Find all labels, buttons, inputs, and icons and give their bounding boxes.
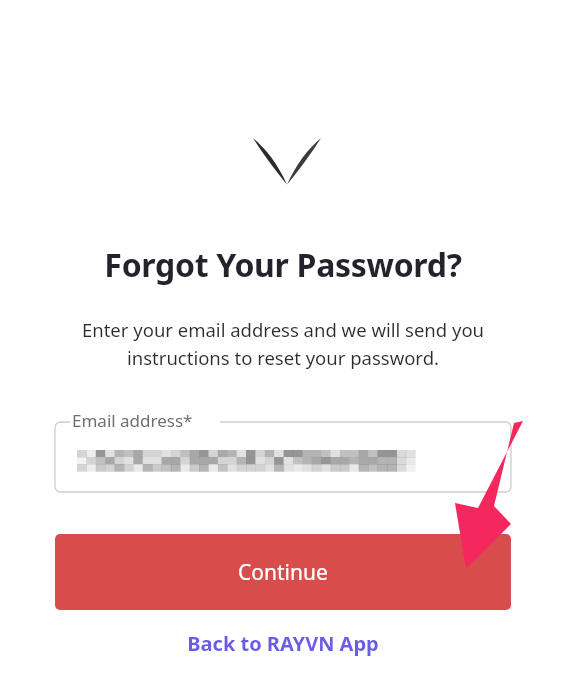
button[interactable]: Back to RAYVN App xyxy=(0,630,566,657)
staticText: Email address* xyxy=(72,409,193,432)
button[interactable]: Continue xyxy=(55,534,511,610)
staticText: Enter your email address and we will sen… xyxy=(54,317,512,370)
staticText: Continue xyxy=(238,558,328,587)
staticText: Back to RAYVN App xyxy=(187,630,379,657)
other: Annotation arrow pointing to Continue xyxy=(0,0,566,677)
staticText: Forgot Your Password? xyxy=(0,243,566,287)
button[interactable] xyxy=(55,422,511,492)
